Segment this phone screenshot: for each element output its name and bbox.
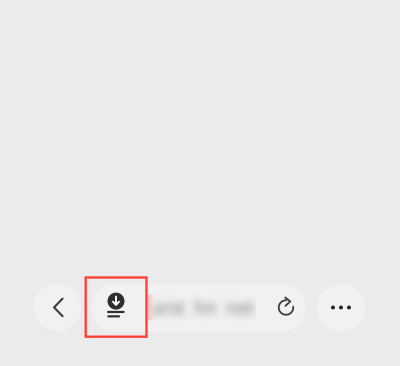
button[interactable]: arst hn net (153, 283, 253, 331)
button[interactable]: More (317, 283, 365, 331)
staticText: arst hn net (153, 296, 253, 319)
button[interactable]: Back (33, 283, 81, 331)
button[interactable]: Downloads (91, 283, 141, 331)
button[interactable]: Reload (266, 283, 306, 331)
